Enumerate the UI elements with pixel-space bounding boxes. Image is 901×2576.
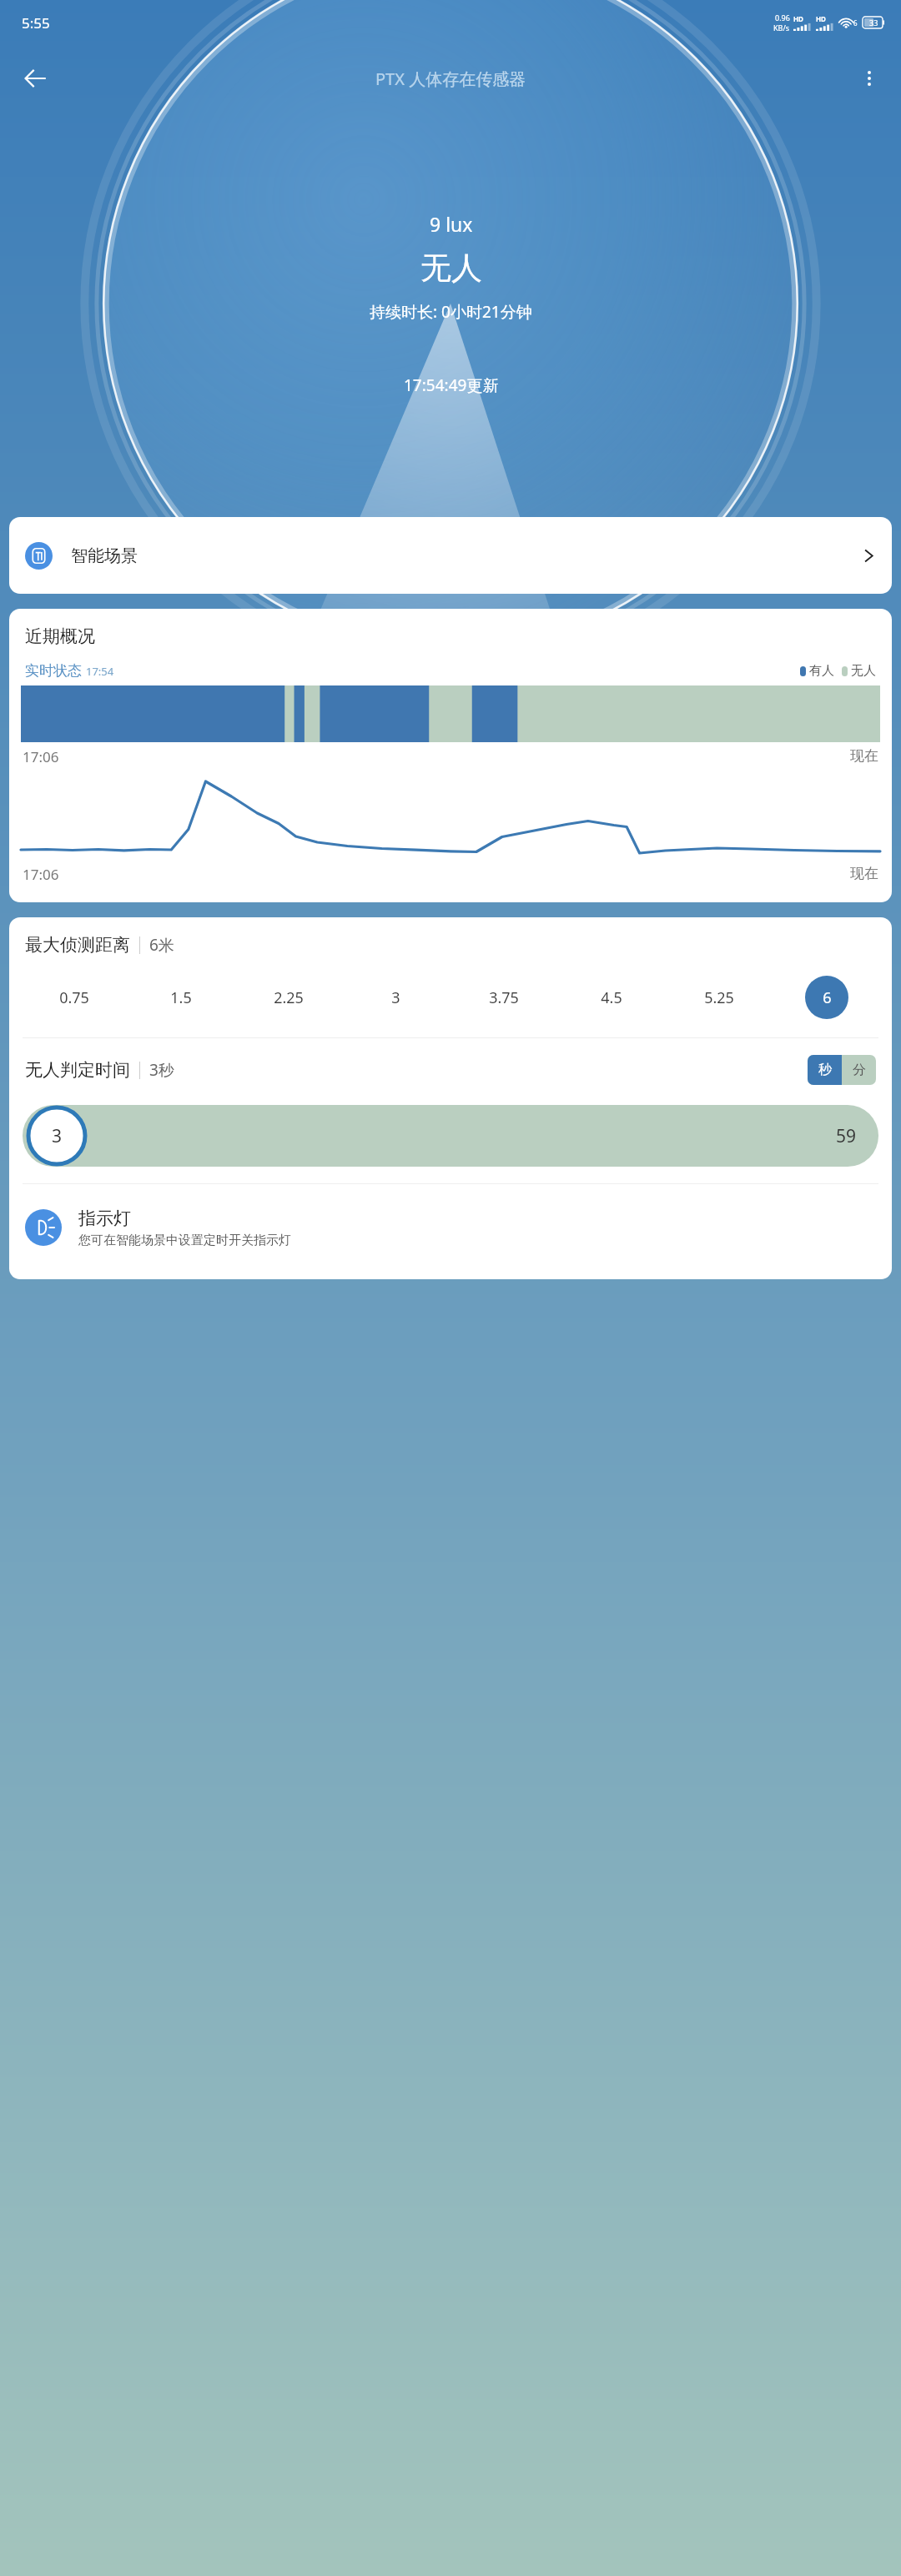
button[interactable]: 3.75	[450, 974, 557, 1021]
button[interactable]: 指示灯	[9, 1184, 892, 1271]
staticText: KB/s	[773, 23, 790, 33]
staticText: 17:06	[23, 865, 59, 884]
staticText: 您可在智能场景中设置定时开关指示灯	[78, 1233, 291, 1248]
button[interactable]: 分	[842, 1055, 876, 1085]
staticText: 6	[853, 18, 858, 28]
staticText: 0.96	[775, 13, 790, 23]
staticText: 持续时长: 0小时21分钟	[370, 301, 532, 323]
button[interactable]: 1.5	[128, 974, 234, 1021]
staticText: HD	[816, 14, 826, 23]
staticText: 6米	[149, 934, 174, 956]
staticText: 17:54:49更新	[404, 374, 499, 396]
staticText: 5:55	[22, 13, 50, 33]
staticText: 0.75	[59, 987, 89, 1008]
staticText: 秒	[818, 1062, 832, 1078]
staticText: 5.25	[704, 987, 734, 1008]
staticText: 智能场景	[71, 545, 138, 566]
staticText: 9 lux	[430, 211, 473, 237]
button[interactable]: 6	[773, 974, 880, 1021]
staticText: 1.5	[170, 987, 192, 1008]
staticText: 59	[836, 1124, 857, 1148]
staticText: 3	[391, 987, 400, 1008]
button[interactable]: Back	[12, 55, 58, 102]
staticText: 无人	[851, 663, 876, 679]
staticText: 有人	[809, 663, 834, 679]
staticText: 2.25	[274, 987, 304, 1008]
button[interactable]: 2.25	[234, 974, 342, 1021]
staticText: 17:54	[86, 664, 114, 679]
staticText: HD	[793, 14, 803, 23]
button[interactable]: 3	[342, 974, 450, 1021]
staticText: 实时状态	[25, 662, 82, 680]
staticText: 最大侦测距离	[25, 934, 130, 956]
staticText: 3.75	[489, 987, 519, 1008]
staticText: 无人	[420, 249, 482, 288]
button[interactable]: 智能场景	[9, 517, 892, 594]
staticText: 17:06	[23, 747, 59, 766]
staticText: 无人判定时间	[25, 1059, 130, 1081]
staticText: 33	[869, 18, 878, 28]
staticText: 3秒	[149, 1059, 174, 1081]
staticText: 3	[52, 1124, 63, 1148]
button[interactable]: 5.25	[665, 974, 773, 1021]
button[interactable]: 秒	[808, 1055, 842, 1085]
staticText: 6	[823, 987, 832, 1008]
button[interactable]: 59	[23, 1103, 878, 1168]
staticText: 近期概况	[25, 625, 95, 647]
button[interactable]: 0.75	[21, 974, 128, 1021]
staticText: 现在	[850, 865, 878, 882]
staticText: 分	[853, 1062, 866, 1078]
staticText: 指示灯	[78, 1208, 131, 1229]
button[interactable]: More options	[848, 57, 891, 100]
staticText: 4.5	[601, 987, 622, 1008]
staticText: 现在	[850, 747, 878, 765]
staticText: PTX 人体存在传感器	[375, 68, 526, 90]
button[interactable]: 4.5	[557, 974, 665, 1021]
